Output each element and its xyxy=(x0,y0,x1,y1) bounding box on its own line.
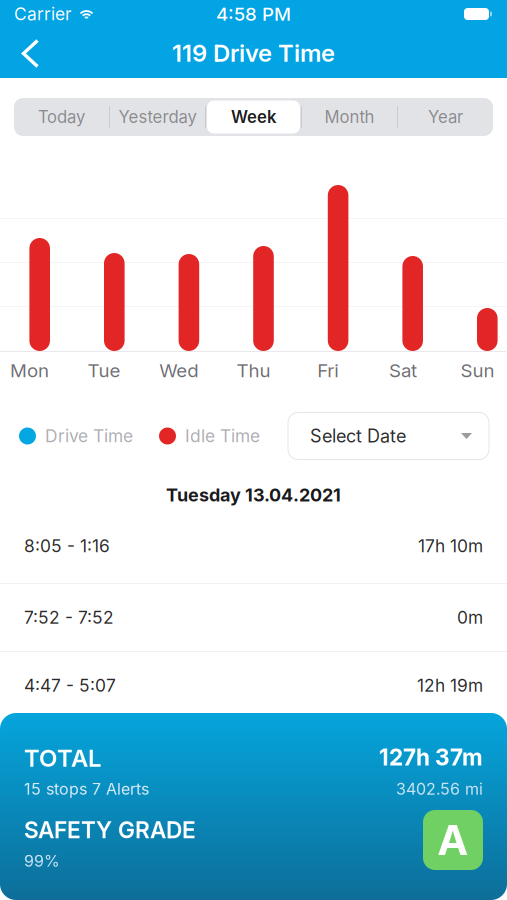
button[interactable]: Select Date xyxy=(288,412,489,459)
staticText: Idle Time xyxy=(185,425,260,446)
staticText: Year xyxy=(428,107,463,127)
staticText: Sat xyxy=(389,359,417,382)
staticText: 3402.56 mi xyxy=(396,779,483,799)
staticText: TOTAL xyxy=(24,743,101,772)
staticText: 0m xyxy=(457,607,483,628)
staticText: 12h 19m xyxy=(417,675,483,696)
staticText: 7:52 - 7:52 xyxy=(24,607,114,628)
staticText: Sun xyxy=(461,359,495,382)
staticText: Mon xyxy=(10,359,49,382)
staticText: 15 stops 7 Alerts xyxy=(24,779,149,799)
staticText: 127h 37m xyxy=(379,743,483,771)
staticText: Yesterday xyxy=(118,107,196,127)
staticText: Week xyxy=(231,107,276,127)
staticText: 8:05 - 1:16 xyxy=(24,535,110,556)
staticText: 17h 10m xyxy=(418,535,483,556)
staticText: Drive Time xyxy=(45,425,133,446)
staticText: SAFETY GRADE xyxy=(24,816,196,844)
button[interactable]: 7:52 - 7:52 xyxy=(0,584,507,651)
button[interactable]: Back xyxy=(0,28,52,78)
staticText: Carrier xyxy=(14,3,72,24)
staticText: Tuesday 13.04.2021 xyxy=(166,484,341,506)
staticText: 99% xyxy=(24,851,60,871)
staticText: Select Date xyxy=(310,425,406,447)
button[interactable]: Month xyxy=(302,98,397,136)
button[interactable]: 8:05 - 1:16 xyxy=(0,509,507,583)
staticText: Today xyxy=(38,107,85,127)
button[interactable]: Week xyxy=(206,98,301,136)
staticText: Month xyxy=(324,107,374,127)
button[interactable]: 4:47 - 5:07 xyxy=(0,652,507,719)
staticText: Thu xyxy=(236,359,270,382)
staticText: Wed xyxy=(159,359,198,382)
staticText: Tue xyxy=(88,359,121,382)
staticText: 4:58 PM xyxy=(216,3,291,25)
button[interactable]: Today xyxy=(14,98,109,136)
staticText: A xyxy=(438,815,468,865)
button[interactable]: Year xyxy=(398,98,493,136)
staticText: 119 Drive Time xyxy=(172,38,335,67)
button[interactable]: Yesterday xyxy=(110,98,205,136)
staticText: 4:47 - 5:07 xyxy=(24,675,116,696)
staticText: Fri xyxy=(317,359,339,382)
